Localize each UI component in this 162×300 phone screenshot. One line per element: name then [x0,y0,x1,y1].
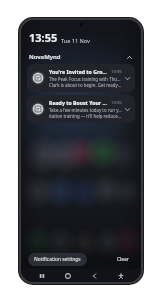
staticText: NovaMynd [29,53,61,61]
button[interactable]: You're Invited to Group Training! [27,64,135,92]
button[interactable]: Accessibility [114,269,127,282]
button[interactable]: NovaMynd [21,51,141,64]
button[interactable]: Notification settings [28,253,87,266]
staticText: Tue 11 Nov [61,37,90,44]
other: Expand notification [124,75,131,82]
staticText: itation training — it'll help reduce str… [49,113,122,119]
other: Expand notification [124,106,131,113]
staticText: 13:55 [29,30,58,45]
other: Collapse group [126,54,133,61]
staticText: Notification settings [34,256,81,263]
button[interactable]: Home [61,269,74,282]
staticText: Clark is about to begin. Get ready to jo… [49,82,122,88]
button[interactable]: Ready to Boost Your Mindfulne... [27,95,135,123]
button[interactable]: Clear [112,253,134,266]
staticText: The Peak Focus training with Thomas [49,76,122,82]
staticText: 13:55 [111,69,122,75]
staticText: You're Invited to Group Training! [49,68,109,75]
staticText: Take a few minutes today to run your med… [49,107,122,113]
staticText: Clear [117,256,129,263]
staticText: Ready to Boost Your Mindfulne... [49,99,109,106]
button[interactable]: Back [88,269,101,282]
staticText: 13:55 [111,100,122,106]
button[interactable]: Recents [35,269,48,282]
